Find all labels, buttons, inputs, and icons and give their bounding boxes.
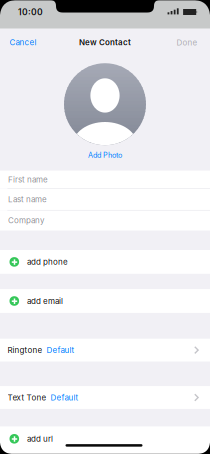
- button[interactable]: First name: [0, 171, 210, 189]
- button[interactable]: add email: [0, 289, 210, 313]
- staticText: Add Photo: [88, 151, 122, 159]
- staticText: add url: [27, 434, 53, 444]
- button[interactable]: Text Tone: [0, 386, 210, 409]
- staticText: add phone: [27, 257, 68, 267]
- staticText: Cancel: [9, 37, 36, 47]
- button[interactable]: Last name: [0, 189, 210, 210]
- staticText: Default: [46, 345, 74, 355]
- staticText: Done: [176, 38, 197, 47]
- button[interactable]: add url: [0, 426, 210, 454]
- staticText: 10:00: [18, 7, 43, 17]
- button[interactable]: Ringtone: [0, 339, 210, 361]
- staticText: Last name: [8, 195, 47, 204]
- button[interactable]: Cancel: [5, 34, 40, 50]
- staticText: add email: [27, 296, 63, 306]
- staticText: New Contact: [79, 37, 131, 47]
- button[interactable]: Add Photo: [64, 63, 146, 145]
- staticText: Company: [8, 216, 44, 225]
- button[interactable]: Add Photo: [84, 149, 126, 161]
- staticText: First name: [8, 175, 48, 184]
- staticText: Ringtone: [7, 345, 42, 355]
- button[interactable]: Company: [0, 210, 210, 230]
- staticText: Text Tone: [7, 393, 46, 402]
- button[interactable]: add phone: [0, 250, 210, 274]
- staticText: Default: [50, 393, 78, 402]
- button[interactable]: Done: [172, 35, 201, 50]
